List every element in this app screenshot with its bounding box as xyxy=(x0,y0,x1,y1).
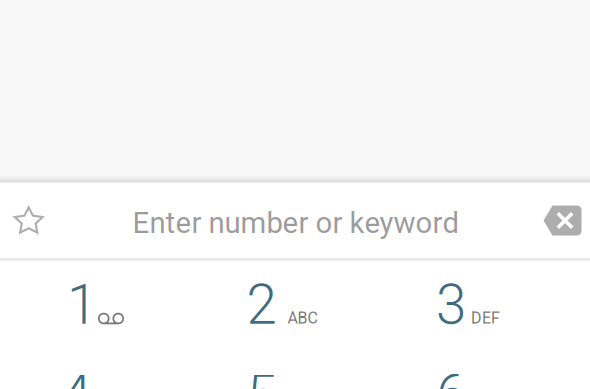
button[interactable]: 5 xyxy=(189,350,379,389)
staticText: 1 xyxy=(67,273,97,337)
button[interactable]: Favourites xyxy=(0,181,58,258)
staticText: ABC xyxy=(287,309,317,327)
staticText: 4 xyxy=(61,363,91,389)
button[interactable]: Delete xyxy=(533,182,590,259)
staticText: 6 xyxy=(436,363,466,389)
button[interactable]: Enter number or keyword xyxy=(86,184,506,261)
staticText: DEF xyxy=(471,309,500,327)
staticText: 2 xyxy=(246,273,276,337)
button[interactable]: 3 xyxy=(379,260,568,350)
button[interactable]: 2 xyxy=(189,260,379,350)
staticText: Enter number or keyword xyxy=(132,206,459,240)
button[interactable]: 4 xyxy=(0,350,189,389)
button[interactable]: 6 xyxy=(379,350,568,389)
button[interactable]: 1 xyxy=(0,260,189,350)
staticText: 3 xyxy=(436,273,466,337)
staticText: 5 xyxy=(246,363,276,389)
